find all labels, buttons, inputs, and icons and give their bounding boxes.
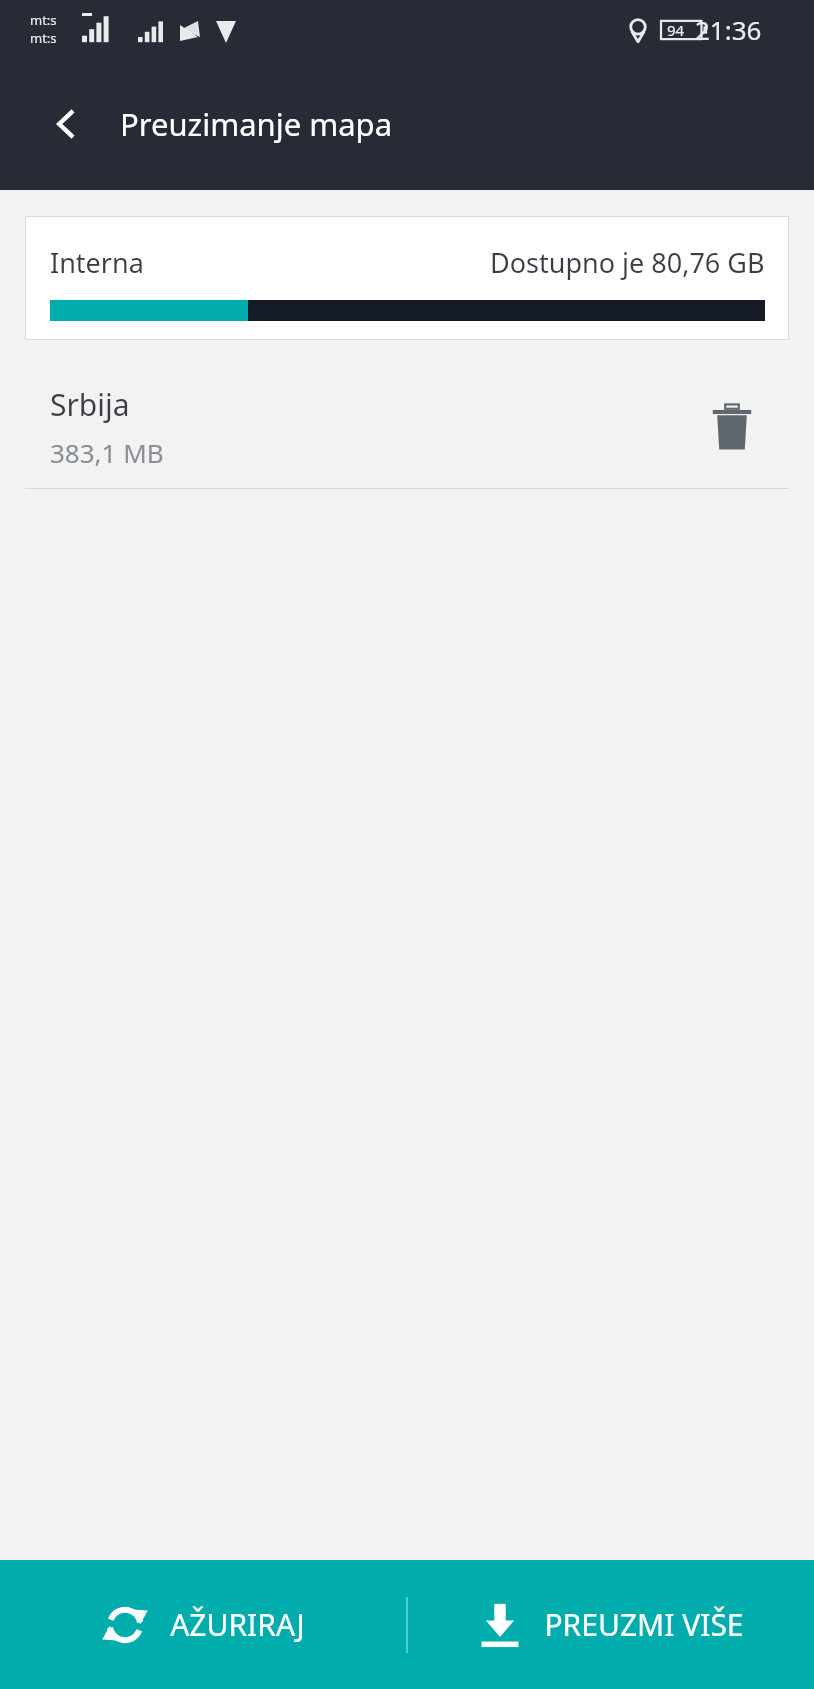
staticText: 21:36 [695,12,762,47]
staticText: Dostupno je 80,76 GB [490,244,765,281]
staticText: 94 [667,20,685,40]
button[interactable]: Interna [25,216,789,340]
button[interactable]: AŽURIRAJ [0,1560,406,1689]
button[interactable]: Back [30,88,102,160]
staticText: Preuzimanje mapa [120,103,393,145]
staticText: AŽURIRAJ [170,1604,305,1645]
button[interactable]: PREUZMI VIŠE [408,1560,814,1689]
staticText: Interna [50,244,144,281]
button[interactable]: Srbija [0,366,814,488]
staticText: mt:s [30,29,57,47]
staticText: 383,1 MB [50,435,164,470]
staticText: PREUZMI VIŠE [544,1604,744,1645]
staticText: mt:s [30,11,57,29]
staticText: Srbija [50,384,130,425]
button[interactable]: Delete [700,395,764,459]
